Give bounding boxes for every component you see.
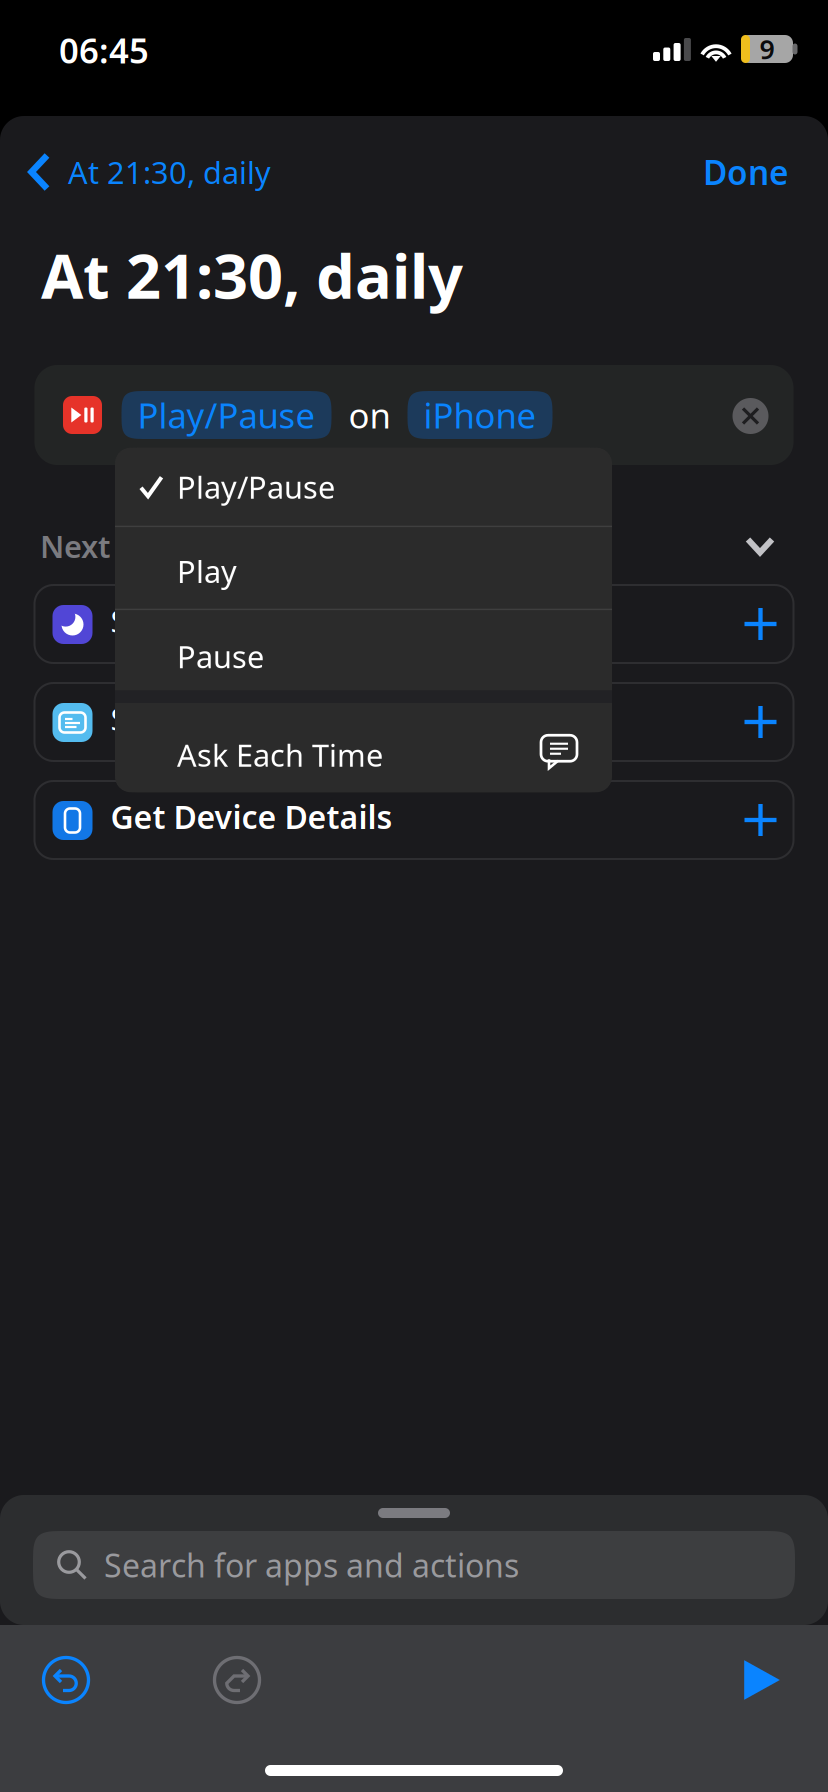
button[interactable]: Ask Each Time [115, 703, 612, 792]
staticText: Play/Pause [137, 392, 315, 438]
button[interactable]: Get Device Details [34, 781, 793, 859]
staticText: Play [177, 551, 237, 591]
staticText: 9 [759, 31, 774, 67]
staticText: on [348, 392, 390, 438]
staticText: Set Sleep Focus [110, 600, 333, 641]
staticText: Show Notification [110, 698, 364, 739]
button[interactable]: At 21:30, daily [0, 134, 330, 210]
button[interactable]: Done [629, 134, 789, 210]
staticText: Pause [177, 636, 264, 677]
button[interactable]: Undo [43, 1657, 88, 1702]
button[interactable]: Set Sleep Focus [34, 585, 793, 663]
staticText: Get Device Details [110, 795, 392, 838]
staticText: Done [703, 150, 789, 194]
button[interactable]: Run shortcut [743, 1659, 781, 1701]
staticText: At 21:30, daily [41, 234, 463, 316]
button[interactable]: Play [115, 527, 612, 609]
staticText: 06:45 [59, 27, 149, 73]
button[interactable]: Pause [115, 610, 612, 690]
staticText: Play/Pause [177, 466, 335, 507]
staticText: At 21:30, daily [68, 152, 271, 192]
staticText: Ask Each Time [177, 734, 383, 775]
button[interactable]: Show Notification [34, 683, 793, 761]
button[interactable]: Redo [214, 1657, 259, 1702]
staticText: Search for apps and actions [104, 1544, 519, 1586]
button[interactable]: Play/Pause [115, 448, 612, 526]
staticText: iPhone [423, 392, 536, 438]
button[interactable]: Collapse suggestions [728, 522, 792, 570]
button[interactable]: Remove action [725, 391, 775, 441]
staticText: Next [40, 526, 110, 566]
